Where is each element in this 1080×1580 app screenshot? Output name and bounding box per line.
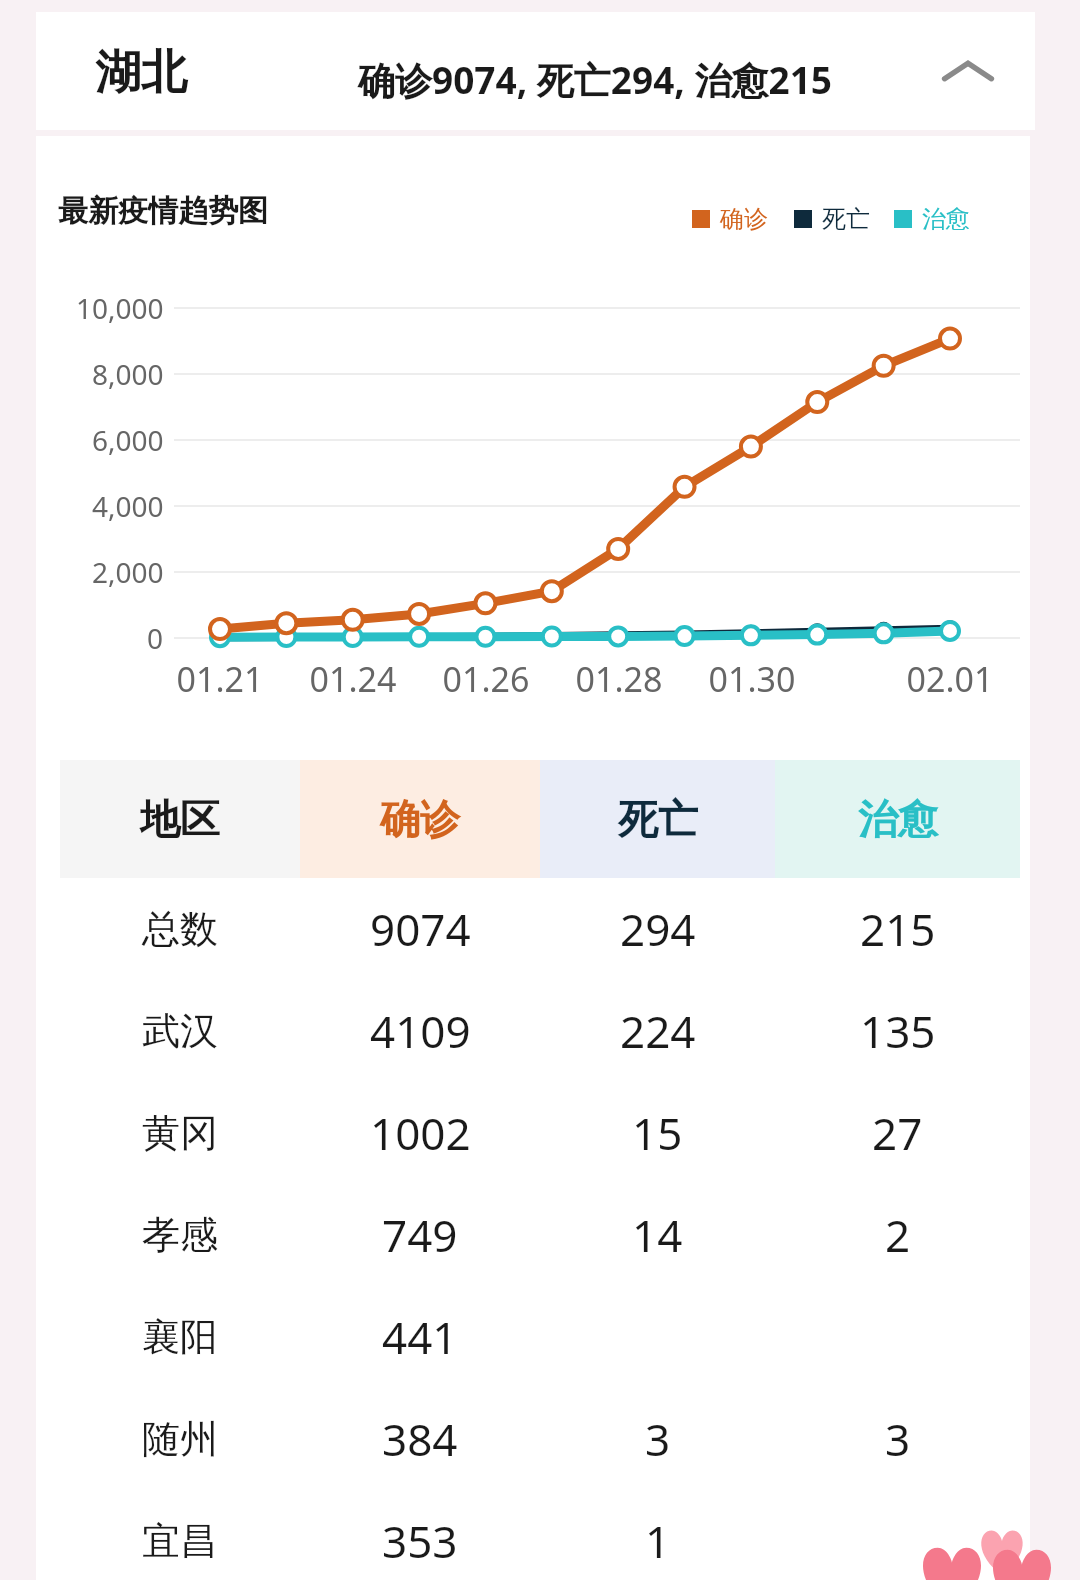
staticText: 确诊: [720, 204, 768, 234]
staticText: 宜昌: [142, 1517, 218, 1565]
staticText: 224: [620, 1001, 696, 1061]
staticText: 01.28: [549, 656, 689, 702]
staticText: 孝感: [142, 1211, 218, 1259]
staticText: 死亡: [822, 204, 870, 234]
button[interactable]: 宜昌: [60, 1490, 1020, 1580]
staticText: 地区: [140, 794, 220, 844]
staticText: 14: [632, 1205, 683, 1265]
button[interactable]: 总数: [60, 878, 1020, 980]
staticText: 4109: [370, 1001, 471, 1061]
staticText: 治愈: [858, 794, 938, 844]
staticText: 最新疫情趋势图: [58, 192, 268, 230]
button[interactable]: 武汉: [60, 980, 1020, 1082]
staticText: 01.24: [283, 656, 423, 702]
staticText: 治愈: [922, 204, 970, 234]
button[interactable]: 治愈: [894, 204, 970, 234]
staticText: 749: [382, 1205, 458, 1265]
staticText: 襄阳: [142, 1313, 218, 1361]
staticText: 死亡: [618, 794, 698, 844]
staticText: 10,000: [76, 289, 164, 327]
staticText: 02.01: [880, 656, 1020, 702]
staticText: 353: [382, 1511, 458, 1571]
staticText: 总数: [142, 905, 218, 953]
button[interactable]: 襄阳: [60, 1286, 1020, 1388]
staticText: 294: [620, 899, 696, 959]
staticText: 确诊: [380, 794, 460, 844]
staticText: 随州: [142, 1415, 218, 1463]
button[interactable]: 湖北: [36, 12, 1035, 130]
button[interactable]: 黄冈: [60, 1082, 1020, 1184]
staticText: 0: [147, 619, 164, 657]
staticText: 9074: [370, 899, 471, 959]
staticText: 2,000: [92, 553, 164, 591]
staticText: 441: [382, 1307, 458, 1367]
staticText: 2: [885, 1205, 911, 1265]
staticText: 确诊9074, 死亡294, 治愈215: [358, 54, 832, 105]
staticText: 135: [860, 1001, 936, 1061]
staticText: 湖北: [95, 44, 187, 102]
button[interactable]: 孝感: [60, 1184, 1020, 1286]
staticText: 8,000: [92, 355, 164, 393]
staticText: 1002: [370, 1103, 471, 1163]
staticText: 384: [382, 1409, 458, 1469]
staticText: 3: [645, 1409, 671, 1469]
staticText: 01.21: [150, 656, 290, 702]
staticText: 3: [885, 1409, 911, 1469]
staticText: 黄冈: [142, 1109, 218, 1157]
staticText: 01.26: [416, 656, 556, 702]
staticText: 4,000: [92, 487, 164, 525]
staticText: 1: [645, 1511, 671, 1571]
staticText: 6,000: [92, 421, 164, 459]
staticText: 武汉: [142, 1007, 218, 1055]
button[interactable]: 确诊: [692, 204, 768, 234]
button[interactable]: 收起: [928, 31, 1008, 111]
staticText: 27: [872, 1103, 923, 1163]
staticText: 215: [860, 899, 936, 959]
button[interactable]: 死亡: [794, 204, 870, 234]
staticText: 01.30: [682, 656, 822, 702]
button[interactable]: 随州: [60, 1388, 1020, 1490]
staticText: 15: [632, 1103, 683, 1163]
